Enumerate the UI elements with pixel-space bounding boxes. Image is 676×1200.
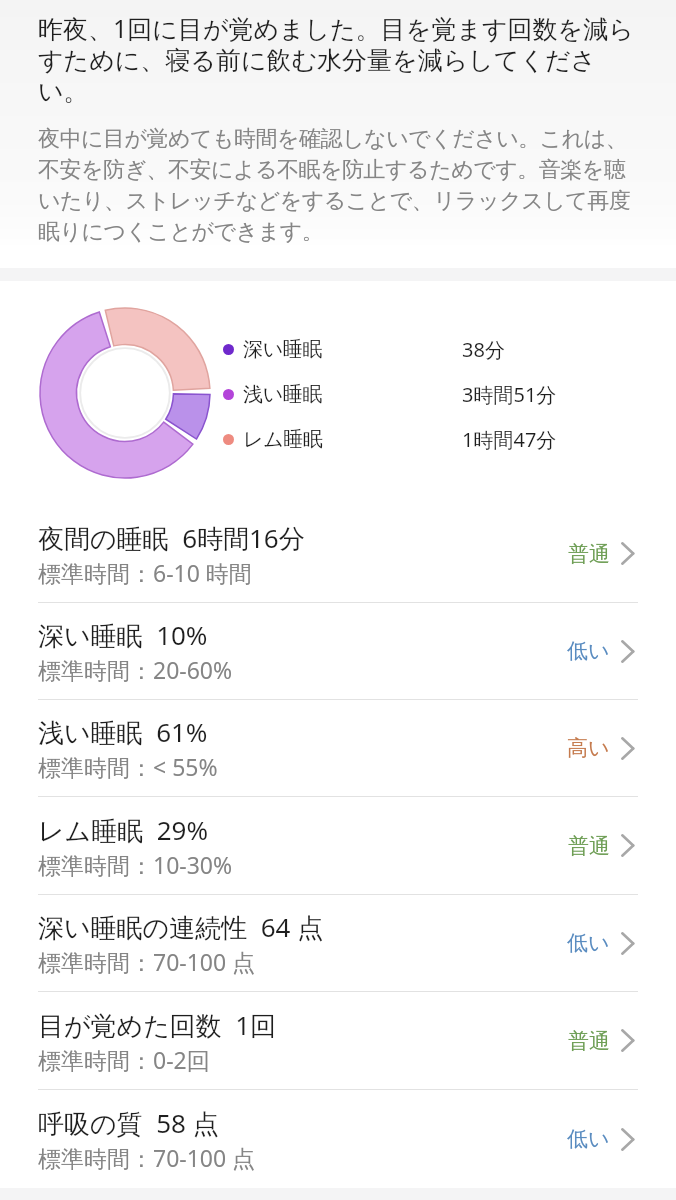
staticText: 低い bbox=[567, 930, 610, 956]
other: 詳細 bbox=[621, 542, 634, 565]
staticText: 深い睡眠 bbox=[243, 337, 323, 362]
staticText: 低い bbox=[567, 1126, 610, 1152]
staticText: 浅い睡眠 61% bbox=[38, 714, 208, 750]
staticText: 38分 bbox=[462, 336, 505, 363]
staticText: 3時間51分 bbox=[462, 381, 557, 408]
other: 詳細 bbox=[621, 932, 634, 955]
button[interactable]: 深い睡眠 10% bbox=[0, 603, 676, 699]
staticText: 低い bbox=[567, 638, 610, 664]
button[interactable]: 夜間の睡眠 6時間16分 bbox=[0, 505, 676, 602]
other: 詳細 bbox=[621, 737, 634, 760]
staticText: 深い睡眠の連続性 64 点 bbox=[38, 909, 324, 945]
staticText: 標準時間：10-30% bbox=[38, 849, 233, 880]
other: 詳細 bbox=[621, 1128, 634, 1151]
staticText: 目が覚めた回数 1回 bbox=[38, 1007, 277, 1043]
staticText: 昨夜、1回に目が覚めました。目を覚ます回数を減らすために、寝る前に飲む水分量を減… bbox=[38, 11, 638, 108]
staticText: 普通 bbox=[568, 1028, 610, 1054]
staticText: 高い bbox=[567, 735, 610, 761]
button[interactable]: 目が覚めた回数 1回 bbox=[0, 992, 676, 1089]
staticText: 深い睡眠 10% bbox=[38, 617, 208, 653]
staticText: 夜間の睡眠 6時間16分 bbox=[38, 520, 305, 556]
staticText: 標準時間：0-2回 bbox=[38, 1044, 210, 1075]
staticText: 普通 bbox=[568, 833, 610, 859]
other: 詳細 bbox=[621, 1029, 634, 1052]
staticText: レム睡眠 bbox=[243, 427, 323, 452]
staticText: 浅い睡眠 bbox=[243, 382, 323, 407]
staticText: レム睡眠 29% bbox=[38, 812, 209, 848]
staticText: 普通 bbox=[568, 541, 610, 567]
staticText: 1時間47分 bbox=[462, 426, 557, 453]
staticText: 標準時間：70-100 点 bbox=[38, 1142, 256, 1173]
other: 詳細 bbox=[621, 834, 634, 857]
button[interactable]: 呼吸の質 58 点 bbox=[0, 1090, 676, 1188]
staticText: 夜中に目が覚めても時間を確認しないでください。これは、不安を防ぎ、不安による不眠… bbox=[38, 125, 642, 246]
staticText: 標準時間：20-60% bbox=[38, 654, 233, 685]
staticText: 標準時間：70-100 点 bbox=[38, 946, 256, 977]
staticText: 呼吸の質 58 点 bbox=[38, 1105, 219, 1141]
button[interactable]: 浅い睡眠 61% bbox=[0, 700, 676, 796]
button[interactable]: 深い睡眠の連続性 64 点 bbox=[0, 895, 676, 991]
button[interactable]: レム睡眠 29% bbox=[0, 797, 676, 894]
staticText: 標準時間：< 55% bbox=[38, 751, 218, 782]
staticText: 標準時間：6-10 時間 bbox=[38, 557, 252, 588]
other: 詳細 bbox=[621, 640, 634, 663]
